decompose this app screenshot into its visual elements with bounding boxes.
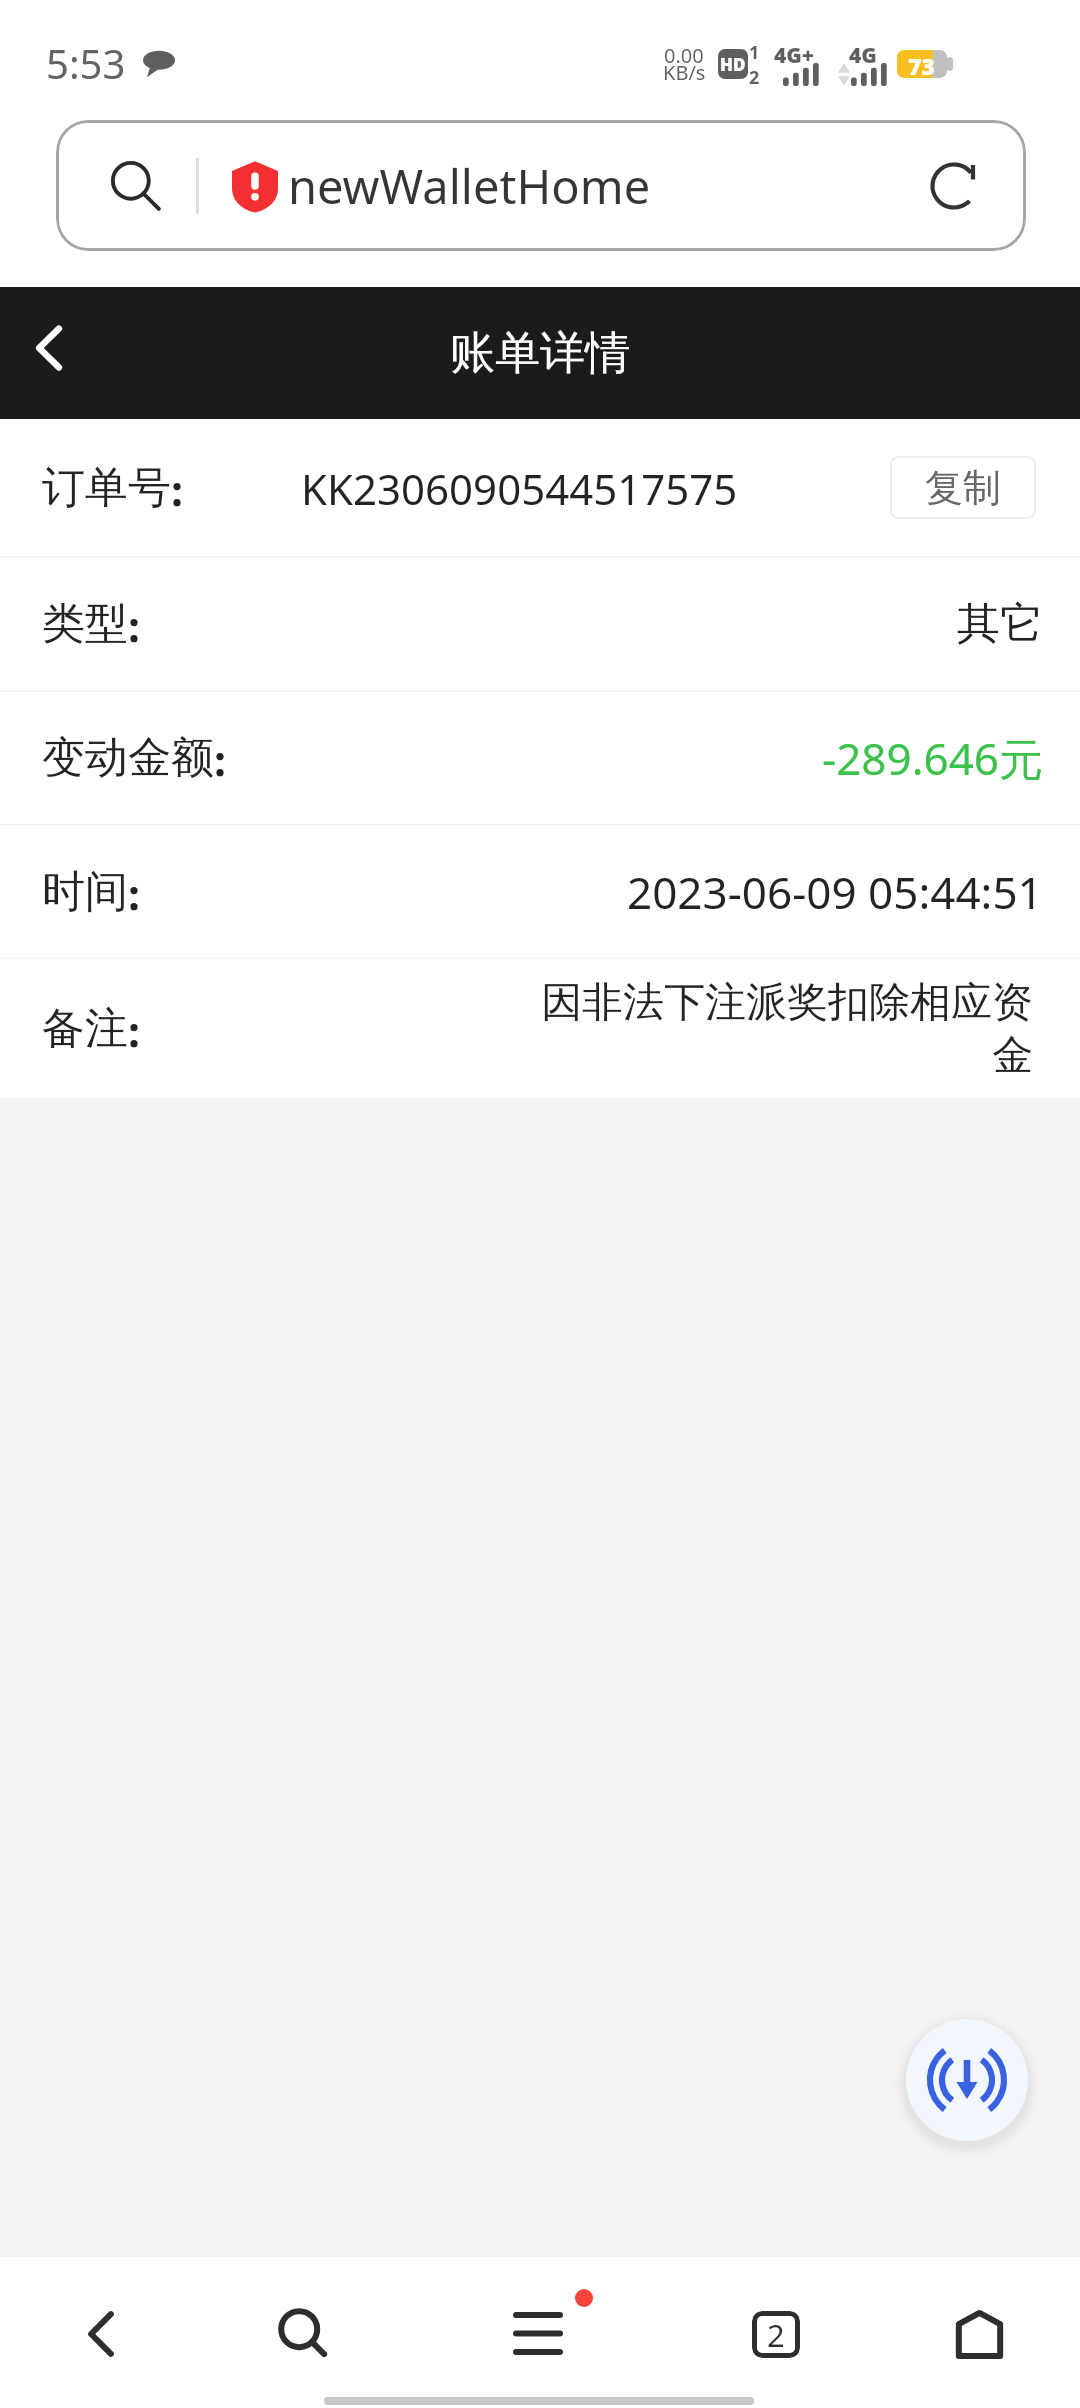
- staticText: 复制: [925, 464, 1001, 512]
- button[interactable]: Home: [864, 2305, 1080, 2363]
- button[interactable]: 时间: [0, 825, 1080, 958]
- button[interactable]: 变动金额: [0, 692, 1080, 824]
- staticText: KB/s: [663, 59, 706, 86]
- staticText: 5:53: [46, 36, 126, 90]
- staticText: HD: [720, 53, 746, 76]
- staticText: 2: [749, 65, 760, 88]
- button[interactable]: Search: [216, 2305, 432, 2363]
- button[interactable]: Back: [0, 2305, 216, 2363]
- staticText: 2023-06-09 05:44:51: [627, 862, 1043, 922]
- staticText: 账单详情: [450, 325, 630, 382]
- button[interactable]: Download: [906, 2019, 1028, 2141]
- staticText: KK230609054451757586: [301, 460, 735, 517]
- staticText: 4G+: [774, 41, 815, 70]
- button[interactable]: 复制: [890, 456, 1036, 519]
- staticText: 变动金额: [42, 731, 214, 785]
- staticText: 2: [767, 2314, 785, 2356]
- staticText: 订单号: [42, 461, 171, 515]
- staticText: -289.646元: [822, 728, 1043, 788]
- staticText: 4G: [849, 41, 877, 70]
- staticText: 0.00: [664, 42, 704, 69]
- staticText: 备注: [42, 1002, 128, 1056]
- button[interactable]: Menu: [432, 2305, 648, 2363]
- staticText: newWalletHome: [288, 154, 651, 218]
- staticText: 73: [908, 50, 935, 78]
- staticText: 因非法下注派奖扣除相应资金: [531, 977, 1033, 1081]
- staticText: 类型: [42, 597, 128, 651]
- button[interactable]: 备注: [0, 959, 1080, 1098]
- staticText: 时间: [42, 865, 128, 919]
- button[interactable]: Back: [5, 304, 93, 392]
- staticText: 其它: [957, 597, 1043, 651]
- button[interactable]: 类型: [0, 557, 1080, 691]
- button[interactable]: Reload: [904, 134, 1008, 238]
- button[interactable]: Tabs: [648, 2305, 864, 2363]
- button[interactable]: 订单号: [0, 419, 1080, 556]
- button[interactable]: newWalletHome: [56, 120, 1026, 251]
- staticText: 1: [749, 40, 760, 65]
